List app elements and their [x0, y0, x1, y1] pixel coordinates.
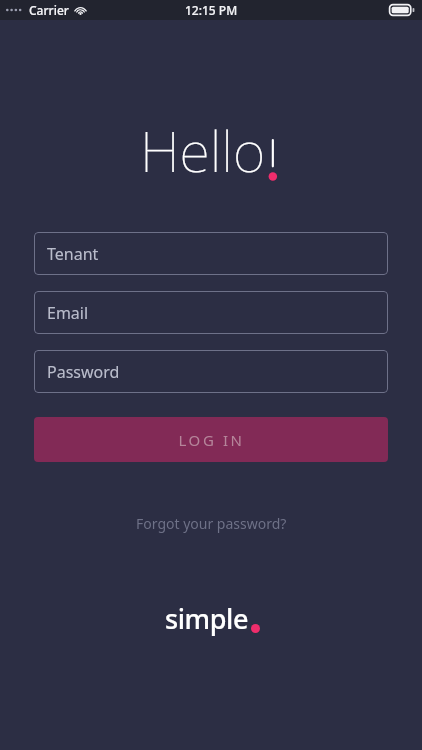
- button[interactable]: Forgot your password?: [126, 509, 297, 538]
- staticText: Hello: [140, 112, 266, 188]
- staticText: Carrier: [29, 2, 69, 18]
- staticText: Forgot your password?: [136, 514, 287, 533]
- button[interactable]: Password: [34, 350, 388, 393]
- staticText: LOG IN: [178, 430, 245, 450]
- button[interactable]: Tenant: [34, 232, 388, 275]
- button[interactable]: LOG IN: [34, 417, 388, 462]
- staticText: 12:15 PM: [185, 2, 238, 18]
- staticText: Email: [47, 302, 89, 324]
- staticText: Password: [47, 361, 120, 383]
- button[interactable]: Email: [34, 291, 388, 334]
- staticText: Tenant: [47, 243, 99, 265]
- staticText: simple: [165, 600, 249, 637]
